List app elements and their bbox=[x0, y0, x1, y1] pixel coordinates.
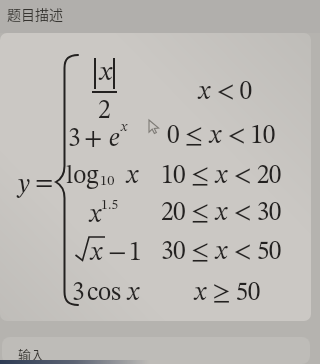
staticText: 𝑥 ≥ 50 bbox=[193, 281, 260, 307]
other: Pointer bbox=[148, 119, 162, 135]
staticText: 𝑥 bbox=[126, 281, 141, 307]
staticText: 𝑥 < 0 bbox=[197, 80, 252, 106]
staticText: 3 bbox=[72, 281, 85, 307]
button[interactable]: 题目描述 bbox=[0, 0, 320, 33]
staticText: 10 bbox=[100, 174, 115, 189]
button[interactable]: 输入 bbox=[2, 337, 310, 364]
staticText: 3 bbox=[68, 127, 81, 153]
staticText: 输入 bbox=[18, 345, 45, 364]
staticText: 1 bbox=[129, 241, 142, 267]
staticText: + bbox=[84, 127, 103, 153]
staticText: 题目描述 bbox=[7, 4, 63, 24]
staticText: 20 ≤ 𝑥 < 30 bbox=[161, 201, 281, 227]
staticText: 1.5 bbox=[101, 198, 119, 212]
staticText: 𝑒 bbox=[109, 127, 120, 153]
staticText: 𝑥 bbox=[120, 120, 128, 134]
staticText: 𝑥 bbox=[89, 241, 104, 267]
staticText: − bbox=[108, 241, 127, 267]
staticText: 𝑥 bbox=[88, 203, 103, 229]
staticText: 𝑥 bbox=[98, 59, 114, 86]
staticText: 10 ≤ 𝑥 < 20 bbox=[161, 164, 281, 190]
staticText: log bbox=[66, 164, 99, 190]
staticText: 𝑦 bbox=[17, 173, 31, 199]
staticText: 2 bbox=[98, 99, 111, 125]
staticText: = bbox=[35, 171, 54, 197]
staticText: cos bbox=[87, 281, 121, 307]
staticText: 𝑥 bbox=[125, 164, 140, 190]
staticText: 0 ≤ 𝑥 < 10 bbox=[167, 124, 275, 150]
staticText: 30 ≤ 𝑥 < 50 bbox=[161, 240, 281, 266]
